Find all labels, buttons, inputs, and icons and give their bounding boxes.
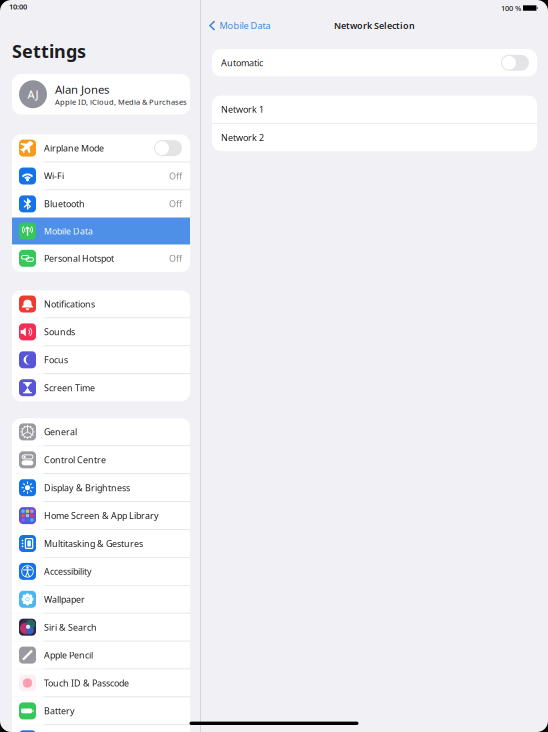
staticText: 10:00 (9, 1, 27, 11)
staticText: Battery (44, 705, 75, 717)
staticText: Control Centre (44, 454, 106, 466)
button[interactable]: Wi-Fi (12, 162, 190, 190)
staticText: Accessibility (44, 565, 92, 577)
button[interactable]: Mobile Data (12, 217, 190, 245)
button[interactable]: Battery (12, 697, 190, 724)
button[interactable]: Focus (12, 346, 190, 373)
staticText: Focus (44, 354, 68, 366)
staticText: Settings (12, 39, 86, 63)
staticText: Touch ID & Passcode (44, 677, 129, 689)
staticText: Network Selection (334, 20, 415, 31)
staticText: Wi-Fi (44, 170, 64, 182)
staticText: General (44, 426, 77, 438)
button[interactable]: Bluetooth (12, 190, 190, 217)
button[interactable]: Personal Hotspot (12, 245, 190, 272)
button[interactable]: Automatic (212, 49, 537, 76)
button[interactable]: Privacy & Security (12, 725, 190, 732)
button[interactable]: Screen Time (12, 374, 190, 401)
button[interactable]: Network 1 (212, 95, 537, 123)
button[interactable]: Touch ID & Passcode (12, 669, 190, 697)
staticText: Sounds (44, 326, 75, 338)
staticText: AJ (27, 87, 38, 101)
staticText: Home Screen & App Library (44, 510, 159, 521)
button[interactable]: AJ (12, 74, 190, 114)
button[interactable]: Notifications (12, 290, 190, 318)
staticText: Wallpaper (44, 593, 85, 605)
button[interactable]: Accessibility (12, 558, 190, 585)
button[interactable]: General (12, 418, 190, 445)
staticText: Off (169, 170, 182, 182)
staticText: Siri & Search (44, 621, 97, 633)
staticText: Airplane Mode (44, 142, 104, 154)
staticText: 100 % (501, 3, 521, 13)
staticText: Mobile Data (44, 225, 93, 237)
staticText: Notifications (44, 298, 95, 310)
button[interactable]: Mobile Data (201, 19, 270, 32)
staticText: Apple ID, iCloud, Media & Purchases (55, 97, 187, 107)
button[interactable]: Display & Brightness (12, 474, 190, 501)
staticText: Multitasking & Gestures (44, 538, 143, 549)
staticText: Off (169, 198, 182, 210)
staticText: Off (169, 252, 182, 264)
staticText: Bluetooth (44, 198, 85, 210)
button[interactable]: Airplane Mode (12, 134, 190, 162)
staticText: Apple Pencil (44, 649, 93, 661)
staticText: Automatic (221, 57, 263, 69)
button[interactable]: Apple Pencil (12, 641, 190, 669)
staticText: Mobile Data (219, 19, 270, 32)
staticText: Display & Brightness (44, 482, 130, 494)
staticText: Personal Hotspot (44, 252, 114, 264)
button[interactable]: Sounds (12, 318, 190, 345)
staticText: Network 2 (221, 131, 264, 143)
button[interactable]: Network 2 (212, 124, 537, 151)
staticText: Screen Time (44, 382, 95, 394)
button[interactable]: Home Screen & App Library (12, 502, 190, 529)
staticText: Alan Jones (55, 82, 109, 97)
staticText: Network 1 (221, 103, 264, 115)
button[interactable]: Wallpaper (12, 586, 190, 613)
button[interactable]: Control Centre (12, 446, 190, 473)
button[interactable]: Multitasking & Gestures (12, 530, 190, 557)
button[interactable]: Siri & Search (12, 614, 190, 641)
